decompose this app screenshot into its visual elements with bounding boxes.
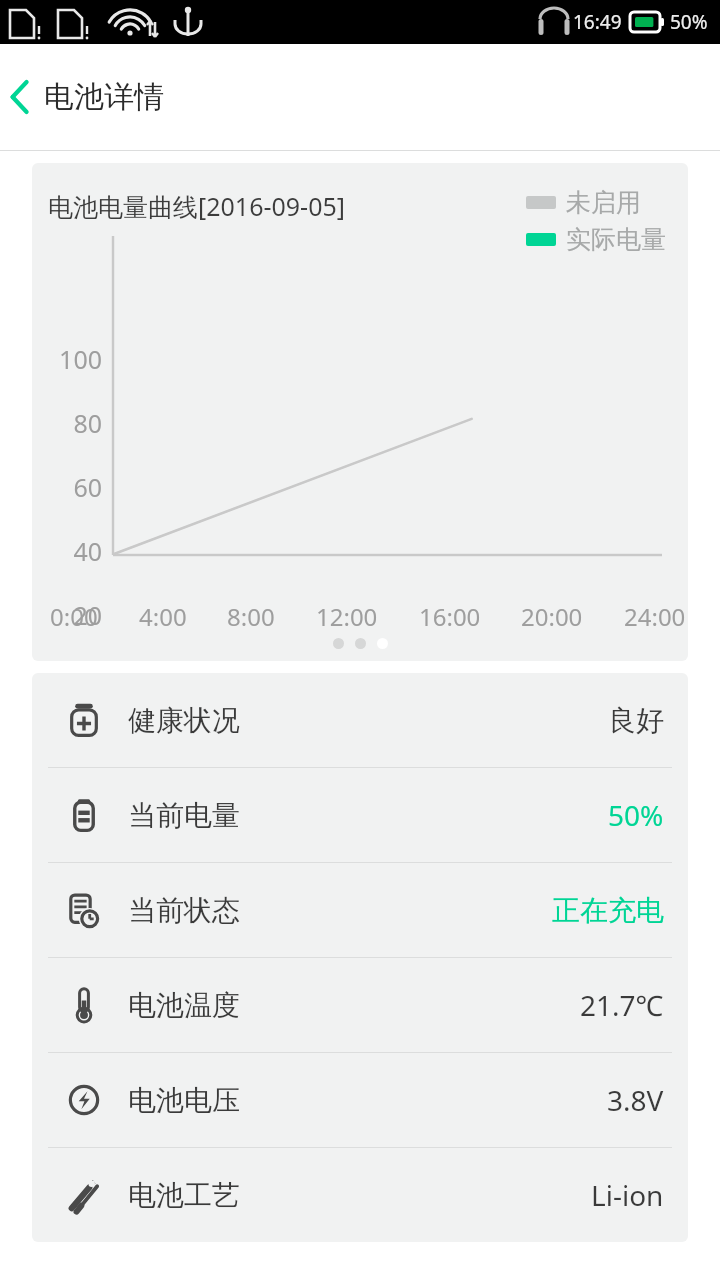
staticText: 80 [32,406,102,440]
staticText: 0:00 [50,600,98,633]
staticText: 实际电量 [566,224,666,255]
staticText: 16:00 [419,600,481,633]
staticText: 24:00 [624,600,686,633]
staticText: 电池电压 [128,1083,240,1118]
staticText: 电池详情 [44,78,164,116]
staticText: 电池电量曲线[2016-09-05] [48,189,345,223]
staticText: 21.7℃ [580,986,664,1024]
staticText: 16:49 [573,9,622,35]
staticText: 20:00 [521,600,583,633]
staticText: 60 [32,470,102,504]
button[interactable]: Back [0,44,720,150]
staticText: 50% [608,796,664,834]
staticText: 健康状况 [128,703,240,738]
button[interactable]: 电池电压 [32,1053,688,1147]
staticText: Li-ion [591,1176,664,1214]
staticText: 电池温度 [128,988,240,1023]
staticText: 电池工艺 [128,1178,240,1213]
button[interactable]: 电池工艺 [32,1148,688,1242]
staticText: 50% [670,9,708,35]
staticText: 100 [32,342,102,376]
button[interactable]: 电池电量曲线[2016-09-05] [32,163,688,661]
staticText: 8:00 [227,600,275,633]
staticText: 20 [32,598,102,632]
staticText: 4:00 [139,600,187,633]
staticText: 3.8V [607,1081,664,1119]
button[interactable]: 健康状况 [32,673,688,767]
staticText: 当前状态 [128,893,240,928]
staticText: 未启用 [566,187,641,218]
staticText: 40 [32,534,102,568]
staticText: 12:00 [316,600,378,633]
button[interactable]: 电池温度 [32,958,688,1052]
button[interactable]: 当前电量 [32,768,688,862]
staticText: 正在充电 [552,893,664,928]
staticText: 良好 [608,703,664,738]
staticText: 当前电量 [128,798,240,833]
button[interactable]: 当前状态 [32,863,688,957]
